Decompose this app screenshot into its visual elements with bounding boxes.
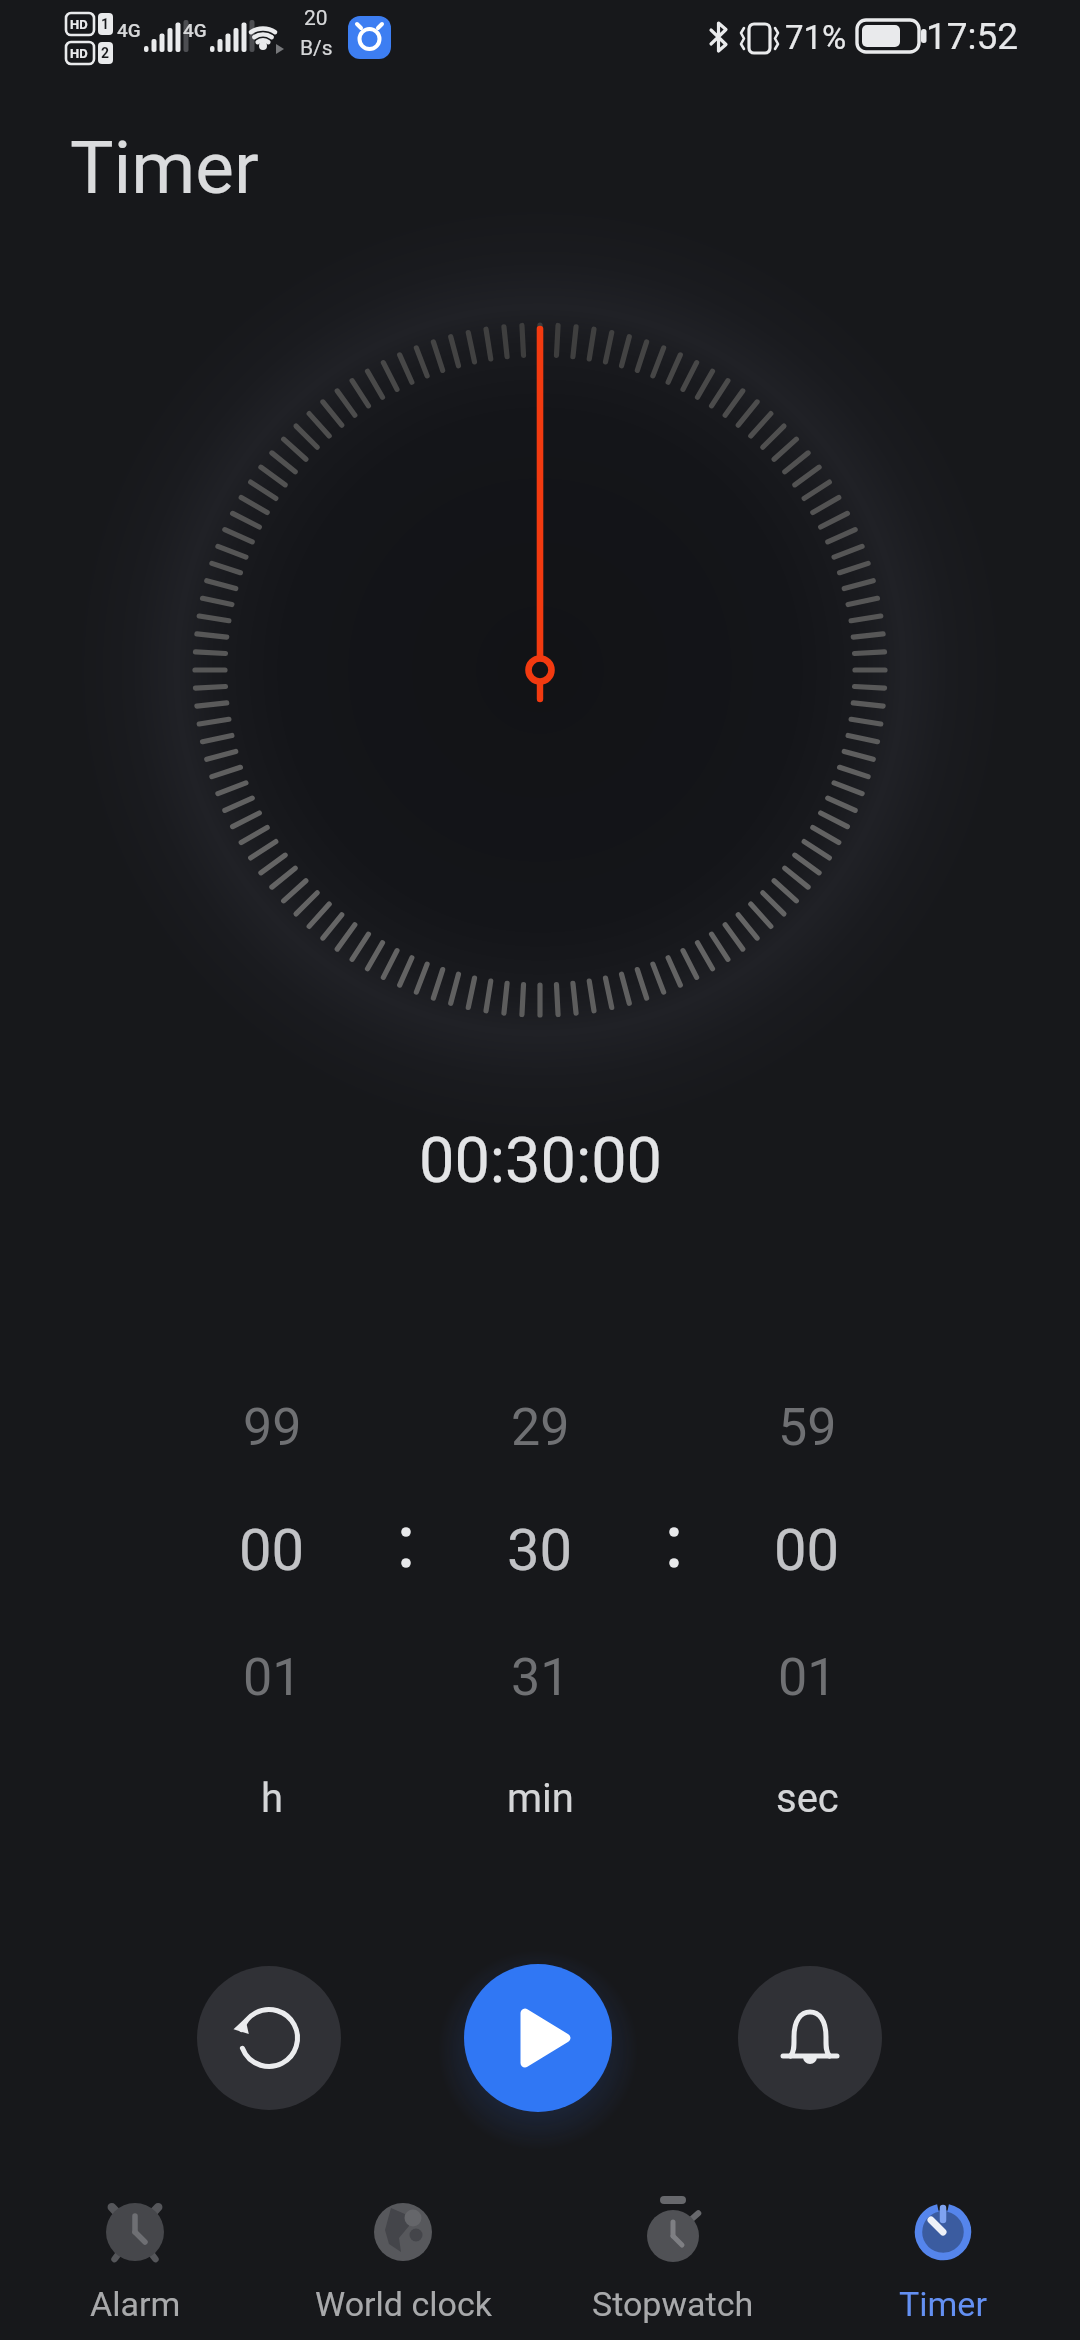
staticText: 2 [101,45,110,61]
staticText: 1 [101,16,110,32]
staticText: 59 [778,1397,837,1457]
staticText: sec [776,1775,839,1822]
staticText: h [261,1775,284,1822]
button[interactable]: World clock [293,2180,513,2335]
staticText: HD [70,17,88,32]
staticText: 00:30:00 [419,1124,662,1198]
staticText: Timer [70,125,259,211]
staticText: 4G [117,19,141,41]
staticText: 4G [183,19,207,41]
button[interactable]: Stopwatch [563,2180,783,2335]
button[interactable] [197,1966,341,2110]
staticText: 99 [243,1397,302,1457]
staticText: B/s [300,36,333,61]
staticText: Stopwatch [592,2284,754,2324]
button[interactable] [464,1964,612,2112]
staticText: 30 [507,1516,573,1584]
staticText: World clock [315,2284,492,2324]
staticText: Alarm [90,2284,181,2324]
button[interactable]: Timer [833,2180,1053,2335]
staticText: Timer [899,2284,987,2324]
staticText: 29 [511,1397,570,1457]
staticText: 00 [774,1516,840,1584]
staticText: 01 [243,1647,302,1707]
staticText: 00 [239,1516,305,1584]
staticText: 01 [778,1647,837,1707]
staticText: 71% [785,18,847,56]
staticText: 17:52 [926,15,1019,57]
staticText: min [507,1775,574,1822]
staticText: 20 [304,6,328,31]
staticText: HD [70,46,88,61]
button[interactable] [738,1966,882,2110]
staticText: 31 [511,1647,570,1707]
button[interactable]: Alarm [25,2180,245,2335]
